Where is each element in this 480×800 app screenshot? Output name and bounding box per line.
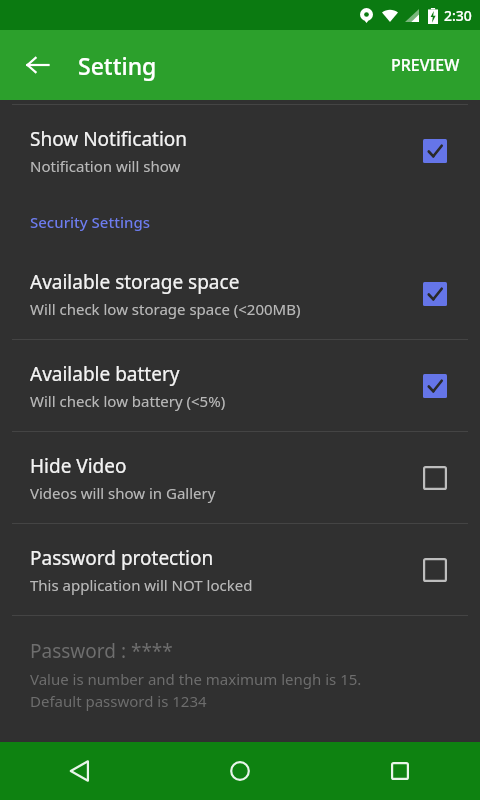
staticText: Password : **** [30, 638, 173, 664]
staticText: PREVIEW [391, 54, 460, 76]
button[interactable]: Home [160, 742, 320, 800]
button[interactable]: PREVIEW [387, 46, 464, 84]
button[interactable]: Password protection [0, 524, 480, 615]
staticText: Available storage space [30, 269, 240, 295]
button[interactable]: Available battery [0, 340, 480, 431]
staticText: Show Notification [30, 126, 188, 152]
staticText: Value is number and the maximum lengh is… [30, 669, 362, 689]
staticText: Videos will show in Gallery [30, 483, 216, 503]
staticText: Hide Video [30, 453, 127, 479]
staticText: Will check low storage space (<200MB) [30, 299, 301, 319]
button[interactable]: Available storage space [0, 248, 480, 339]
staticText: Setting [78, 50, 157, 81]
staticText: Available battery [30, 361, 180, 387]
button[interactable]: Back [0, 742, 160, 800]
staticText: Will check low battery (<5%) [30, 391, 226, 411]
staticText: This application will NOT locked [30, 575, 253, 595]
button[interactable]: Hide Video [0, 432, 480, 523]
staticText: Default password is 1234 [30, 691, 207, 711]
button[interactable]: Show Notification [0, 105, 480, 196]
staticText: Notification will show [30, 156, 181, 176]
button[interactable]: Recent apps [320, 742, 480, 800]
staticText: Security Settings [30, 212, 150, 232]
staticText: Password protection [30, 545, 214, 571]
staticText: 2:30 [444, 6, 472, 25]
button[interactable]: Back [16, 43, 60, 87]
